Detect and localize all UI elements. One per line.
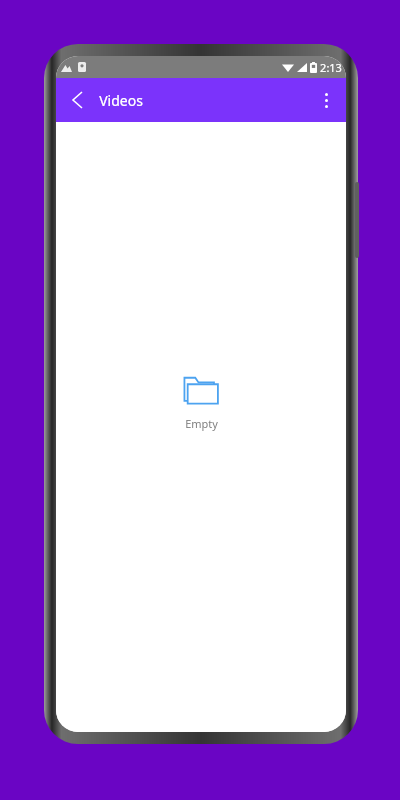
button[interactable]: More options xyxy=(309,83,343,117)
staticText: Videos xyxy=(99,91,143,110)
button[interactable]: Back xyxy=(60,83,94,117)
staticText: Empty xyxy=(185,416,218,431)
staticText: 2:13 xyxy=(320,60,342,75)
